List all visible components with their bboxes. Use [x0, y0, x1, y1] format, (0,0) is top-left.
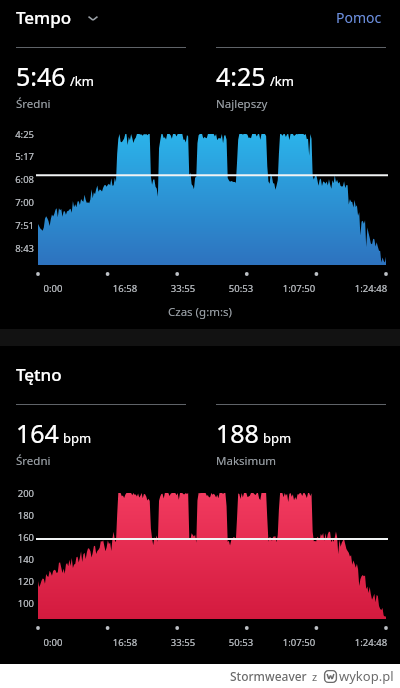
staticText: 164: [16, 416, 59, 450]
staticText: /km: [270, 72, 294, 90]
staticText: 1:07:50: [270, 636, 328, 649]
other: Expand metric selector: [86, 11, 100, 25]
staticText: Stormweaver: [230, 668, 307, 684]
staticText: 160: [6, 531, 34, 544]
staticText: 188: [216, 416, 259, 450]
staticText: bpm: [263, 429, 292, 447]
staticText: Najlepszy: [216, 96, 268, 112]
staticText: 140: [6, 553, 34, 566]
staticText: 1:24:48: [342, 282, 400, 295]
staticText: 5:17: [6, 150, 34, 163]
staticText: Tempo: [16, 6, 72, 29]
staticText: /km: [70, 72, 94, 90]
staticText: 200: [6, 487, 34, 500]
staticText: Średni: [16, 96, 51, 112]
staticText: Tętno: [16, 363, 62, 386]
staticText: Pomoc: [336, 8, 382, 27]
staticText: Średni: [16, 453, 51, 469]
staticText: 16:58: [96, 282, 154, 295]
staticText: 33:55: [154, 636, 212, 649]
staticText: wykop.pl: [339, 667, 394, 685]
staticText: 50:53: [212, 636, 270, 649]
staticText: 1:07:50: [270, 282, 328, 295]
staticText: bpm: [63, 429, 92, 447]
other: wykop.pl logo: [324, 670, 337, 683]
staticText: 180: [6, 509, 34, 522]
staticText: 100: [6, 597, 34, 610]
staticText: 50:53: [212, 282, 270, 295]
staticText: 120: [6, 575, 34, 588]
staticText: 8:43: [6, 242, 34, 255]
staticText: Maksimum: [216, 453, 277, 469]
staticText: 4:25: [6, 128, 34, 141]
staticText: 7:00: [6, 196, 34, 209]
staticText: 7:51: [6, 219, 34, 232]
button[interactable]: Tempo: [16, 6, 104, 29]
staticText: 5:46: [16, 59, 66, 93]
staticText: Czas (g:m:s): [168, 304, 233, 320]
staticText: 0:00: [24, 636, 82, 649]
staticText: 6:08: [6, 173, 34, 186]
staticText: 4:25: [216, 59, 266, 93]
staticText: 0:00: [24, 282, 82, 295]
staticText: 16:58: [96, 636, 154, 649]
staticText: 1:24:48: [342, 636, 400, 649]
button[interactable]: Pomoc: [332, 4, 386, 31]
staticText: 33:55: [154, 282, 212, 295]
staticText: z: [312, 669, 318, 684]
